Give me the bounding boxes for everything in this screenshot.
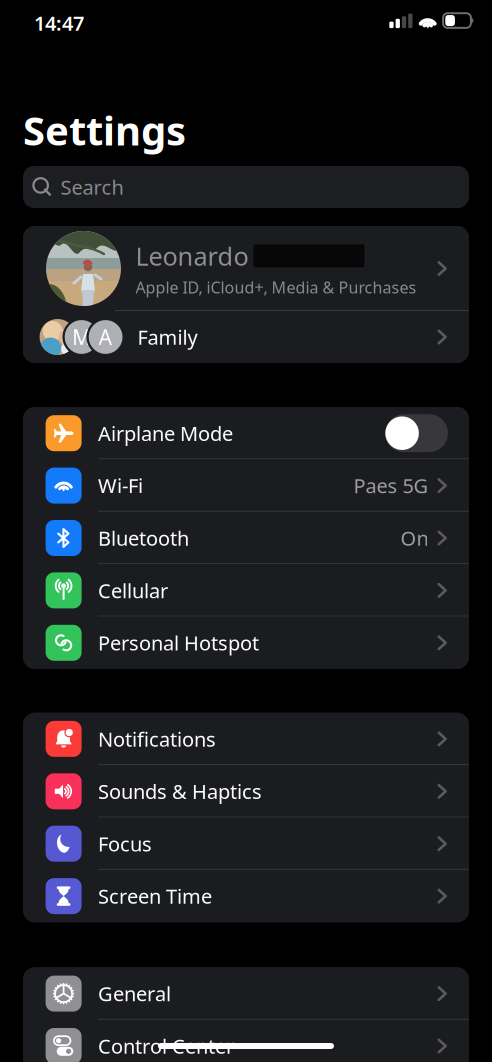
button[interactable]: Cellular	[23, 564, 469, 617]
button[interactable]: Bluetooth	[23, 512, 469, 564]
staticText: Control Center	[98, 1033, 234, 1059]
staticText: M	[72, 323, 91, 351]
staticText: Leonardo	[135, 239, 248, 273]
button[interactable]: Airplane Mode	[23, 407, 469, 459]
staticText: On	[400, 525, 428, 551]
staticText: Apple ID, iCloud+, Media & Purchases	[135, 277, 416, 298]
button[interactable]: Leonardo	[23, 226, 469, 311]
staticText: Search	[60, 174, 123, 200]
staticText: 14:47	[34, 10, 84, 36]
staticText: Personal Hotspot	[98, 629, 259, 656]
button[interactable]: M	[23, 311, 469, 363]
button[interactable]: Personal Hotspot	[23, 617, 469, 669]
button[interactable]: General	[23, 967, 469, 1020]
staticText: Settings	[23, 103, 186, 156]
staticText: Sounds & Haptics	[98, 778, 262, 805]
button[interactable]: Screen Time	[23, 870, 469, 922]
staticText: A	[99, 323, 113, 351]
staticText: Airplane Mode	[98, 420, 233, 446]
staticText: General	[98, 980, 171, 1007]
button[interactable]: Search	[23, 166, 469, 208]
button[interactable]: Wi-Fi	[23, 459, 469, 512]
button[interactable]: Focus	[23, 817, 469, 870]
button[interactable]: Control Center	[23, 1020, 469, 1062]
staticText: Notifications	[98, 726, 216, 752]
button[interactable]: Notifications	[23, 713, 469, 765]
staticText: Cellular	[98, 577, 168, 604]
staticText: Bluetooth	[98, 525, 189, 551]
button[interactable]: Sounds & Haptics	[23, 765, 469, 817]
staticText: Screen Time	[98, 883, 212, 909]
staticText: Wi-Fi	[98, 472, 143, 499]
staticText: Focus	[98, 830, 152, 857]
staticText: Family	[138, 324, 198, 350]
staticText: Paes 5G	[353, 472, 428, 499]
